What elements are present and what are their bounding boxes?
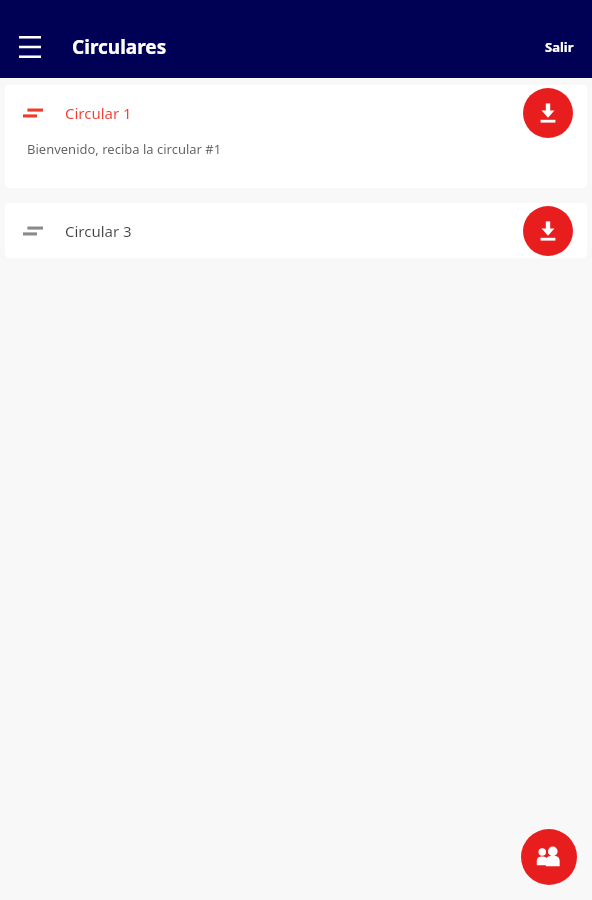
button[interactable]: Salir	[527, 28, 592, 66]
staticText: Bienvenido, reciba la circular #1	[27, 140, 222, 158]
staticText: Circular 1	[65, 103, 132, 123]
button[interactable]: Circular 3	[5, 203, 587, 258]
staticText: Circular 3	[65, 221, 132, 241]
staticText: Circulares	[72, 34, 167, 60]
button[interactable]: Descargar	[523, 88, 573, 138]
button[interactable]: Menú	[12, 29, 48, 65]
button[interactable]: Contactos	[521, 829, 577, 885]
staticText: Salir	[545, 38, 574, 56]
button[interactable]: Descargar	[523, 206, 573, 256]
button[interactable]: Circular 1	[5, 85, 587, 188]
